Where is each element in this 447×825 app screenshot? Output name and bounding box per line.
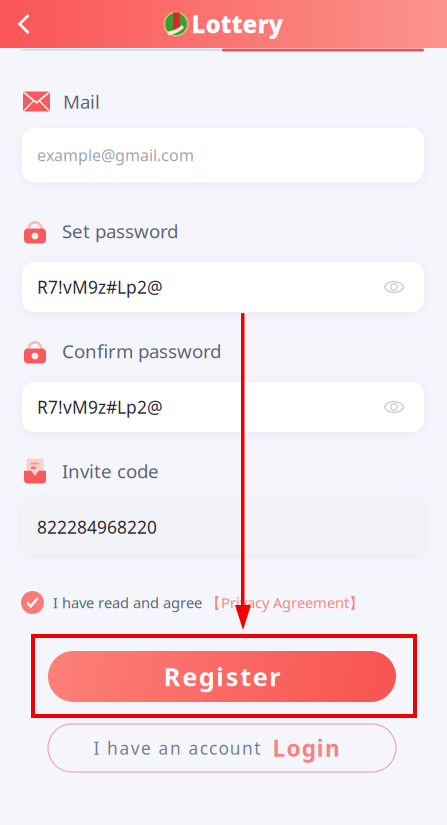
staticText: Set password xyxy=(62,219,178,243)
button[interactable]: Back xyxy=(2,0,46,48)
staticText: R7!vM9z#Lp2@ xyxy=(37,395,163,418)
button[interactable]: Show confirm password xyxy=(384,399,404,414)
staticText: Mail xyxy=(63,89,100,114)
staticText: I have read and agree xyxy=(53,593,202,612)
staticText: Register xyxy=(164,660,280,693)
button[interactable]: I have an account xyxy=(48,724,396,772)
staticText: 822284968220 xyxy=(37,515,157,538)
staticText: example@gmail.com xyxy=(37,144,194,166)
staticText: 【Privacy Agreement】 xyxy=(206,593,364,612)
button[interactable]: Show password xyxy=(384,279,404,294)
staticText: I have an account xyxy=(93,736,260,759)
staticText: Invite code xyxy=(62,459,159,483)
button[interactable]: Register xyxy=(48,651,396,702)
button[interactable]: 【Privacy Agreement】 xyxy=(193,593,351,612)
staticText: Lottery xyxy=(191,8,283,40)
staticText: R7!vM9z#Lp2@ xyxy=(37,275,163,298)
staticText: Login xyxy=(272,733,340,763)
staticText: Confirm password xyxy=(62,339,221,363)
button[interactable]: Agree to privacy agreement xyxy=(21,591,44,614)
